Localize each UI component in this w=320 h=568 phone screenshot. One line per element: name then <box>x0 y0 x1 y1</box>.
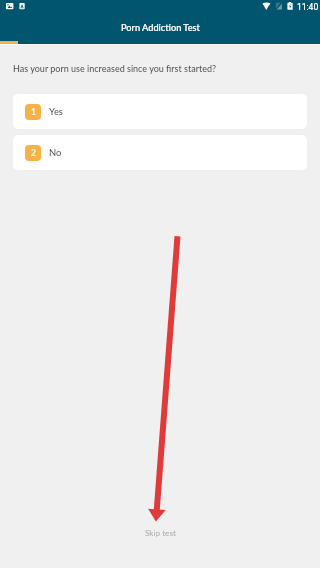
staticText: 2 <box>31 148 36 158</box>
staticText: No <box>49 147 62 158</box>
staticText: Porn Addiction Test <box>121 22 200 33</box>
button[interactable]: 2 <box>13 135 307 170</box>
staticText: Skip test <box>145 528 176 538</box>
staticText: 11:40 <box>297 2 319 12</box>
button[interactable]: 1 <box>13 94 307 129</box>
staticText: 1 <box>31 107 36 117</box>
staticText: Has your porn use increased since you fi… <box>13 63 217 74</box>
button[interactable]: Skip test <box>120 520 200 546</box>
staticText: Yes <box>49 106 63 117</box>
